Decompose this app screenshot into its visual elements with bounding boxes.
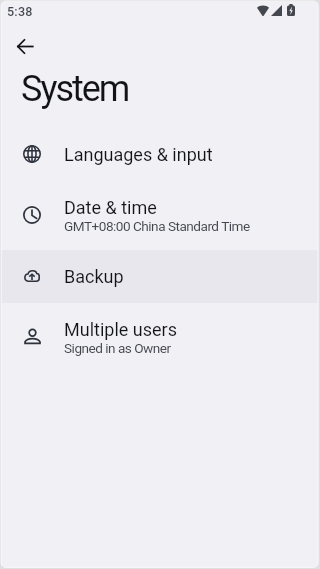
staticText: GMT+08:00 China Standard Time	[64, 218, 250, 234]
staticText: 5:38	[7, 4, 33, 19]
button[interactable]: Date & time	[0, 181, 320, 250]
staticText: Signed in as Owner	[64, 340, 171, 356]
staticText: Backup	[64, 266, 124, 287]
button[interactable]: Multiple users	[0, 303, 320, 372]
staticText: Languages & input	[64, 144, 213, 165]
staticText: Multiple users	[64, 319, 177, 340]
staticText: Date & time	[64, 197, 157, 218]
staticText: System	[21, 68, 129, 110]
button[interactable]: Backup	[0, 250, 320, 303]
button[interactable]: Languages & input	[0, 128, 320, 181]
button[interactable]: Navigate up	[7, 28, 43, 64]
